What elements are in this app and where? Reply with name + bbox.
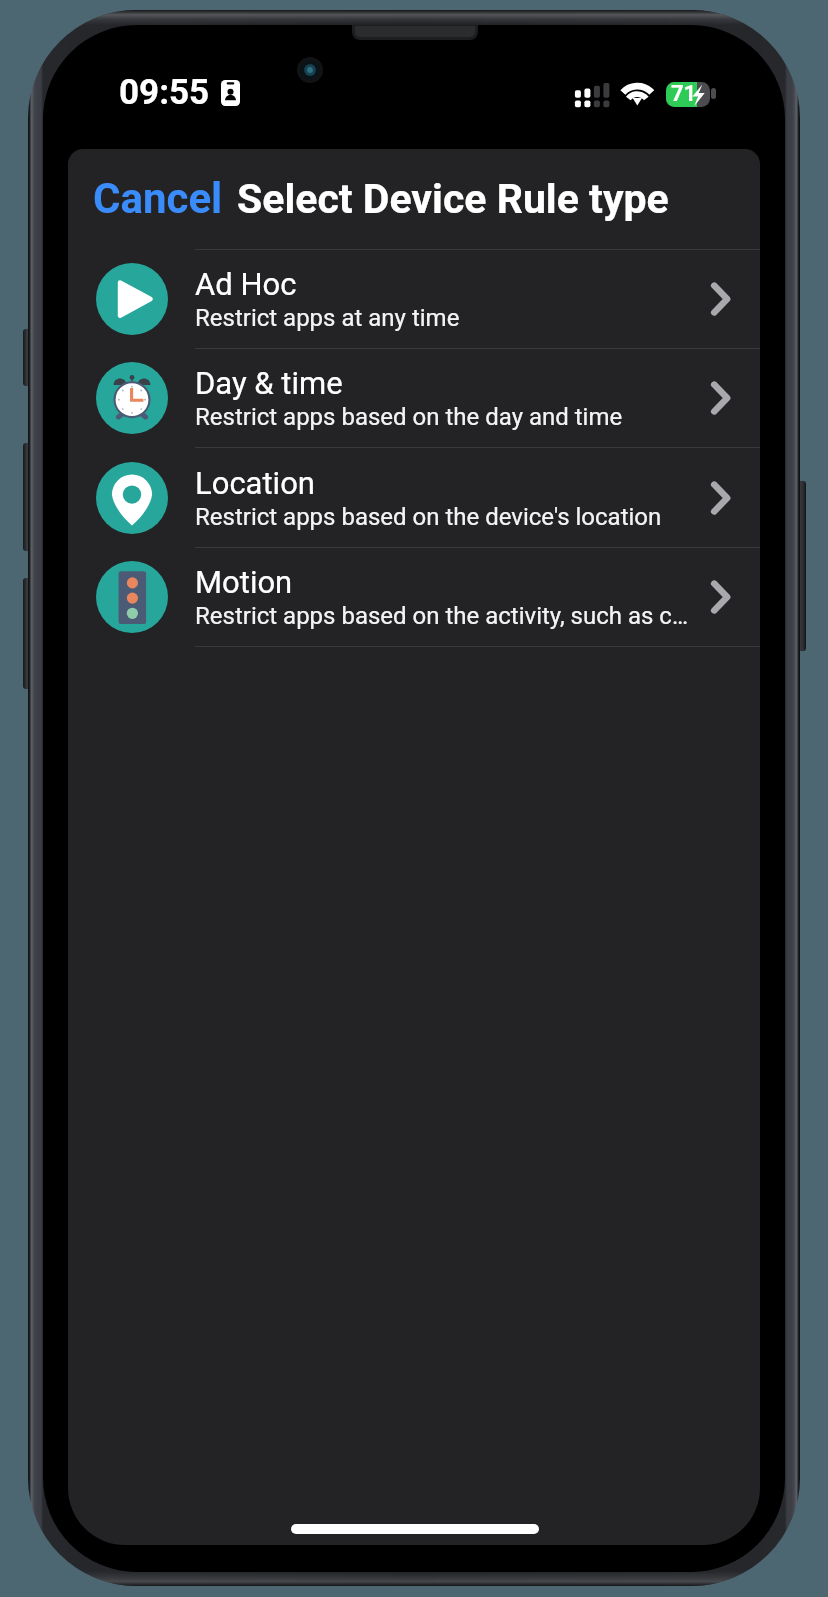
button[interactable]: Cancel (93, 174, 223, 223)
staticText: Location (195, 465, 315, 501)
staticText: Select Device Rule type (237, 175, 669, 223)
staticText: Cancel (93, 174, 223, 223)
staticText: 09:55 (119, 72, 210, 113)
staticText: Restrict apps at any time (195, 304, 460, 332)
button[interactable]: Motion (68, 548, 760, 646)
staticText: Restrict apps based on the activity, suc… (195, 602, 688, 630)
staticText: Restrict apps based on the day and time (195, 403, 623, 431)
button[interactable]: Ad Hoc (68, 250, 760, 348)
other: Open Day & time (701, 378, 741, 418)
other: Open Location (701, 478, 741, 518)
other: Open Ad Hoc (701, 279, 741, 319)
staticText: Day & time (195, 365, 343, 401)
button[interactable]: Location (68, 448, 760, 547)
button[interactable]: Day & time (68, 349, 760, 447)
staticText: Motion (195, 564, 293, 600)
staticText: Restrict apps based on the device's loca… (195, 503, 662, 531)
staticText: Ad Hoc (195, 266, 297, 302)
staticText: 71 (671, 81, 697, 106)
other: Open Motion (701, 577, 741, 617)
